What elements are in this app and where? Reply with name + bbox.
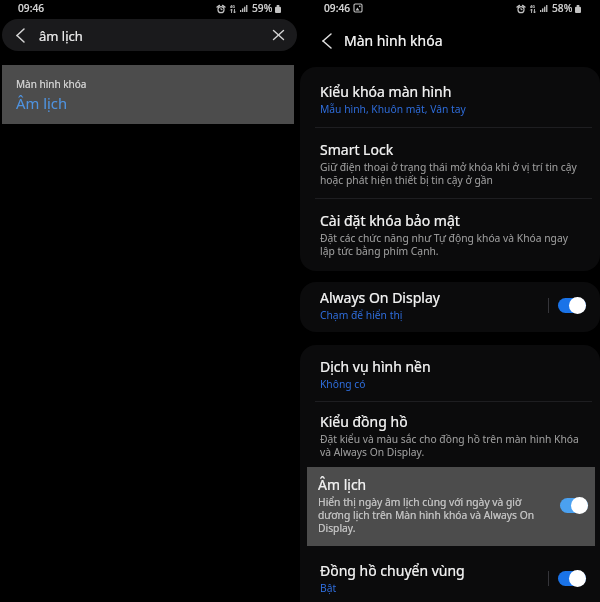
button[interactable]: Màn hình khóa [2, 65, 294, 124]
button[interactable]: Cài đặt khóa bảo mật [300, 199, 600, 271]
staticText: 4G [230, 4, 235, 9]
staticText: Smart Lock [320, 141, 394, 159]
staticText: Cài đặt khóa bảo mật [320, 212, 460, 230]
staticText: Kiểu khóa màn hình [320, 83, 452, 101]
staticText: 4G [530, 4, 535, 9]
staticText: Chạm để hiển thị [320, 308, 403, 321]
button[interactable]: Kiểu khóa màn hình [300, 67, 600, 127]
staticText: 58% [552, 2, 573, 15]
staticText: 09:46 [18, 2, 45, 15]
button[interactable]: Kiểu đồng hồ [300, 402, 600, 467]
staticText: Không có [320, 377, 366, 390]
staticText: Đặt kiểu và màu sắc cho đồng hồ trên màn… [320, 432, 579, 458]
staticText: Màn hình khóa [16, 78, 87, 91]
button[interactable]: Always On Display [558, 297, 586, 314]
staticText: Đặt các chức năng như Tự động khóa và Kh… [320, 231, 568, 257]
button[interactable]: Đồng hồ chuyển vùng [558, 570, 586, 587]
button[interactable]: Back [9, 24, 32, 47]
button[interactable]: Âm lịch [560, 497, 588, 514]
button[interactable]: Đồng hồ chuyển vùng [300, 546, 600, 602]
button[interactable]: Back [315, 29, 339, 53]
staticText: Hiển thị ngày âm lịch cùng với ngày và g… [318, 495, 535, 534]
staticText: Mẫu hình, Khuôn mặt, Vân tay [320, 102, 466, 115]
staticText: Đồng hồ chuyển vùng [320, 562, 465, 580]
staticText: Always On Display [320, 289, 440, 307]
staticText: 09:46 [324, 2, 351, 15]
button[interactable]: Always On Display [300, 282, 600, 332]
staticText: âm lịch [39, 28, 83, 45]
button[interactable]: Âm lịch [307, 467, 595, 546]
button[interactable]: Clear search [267, 24, 289, 46]
staticText: Âm lịch [318, 476, 367, 494]
staticText: Giữ điện thoại ở trạng thái mở khóa khi … [320, 160, 577, 186]
button[interactable]: Smart Lock [300, 128, 600, 198]
staticText: 59% [252, 2, 273, 15]
button[interactable]: Back [2, 19, 297, 51]
staticText: Màn hình khóa [344, 32, 443, 50]
staticText: Bật [320, 581, 337, 594]
staticText: Dịch vụ hình nền [320, 358, 431, 376]
staticText: Kiểu đồng hồ [320, 413, 408, 431]
staticText: Âm lịch [16, 94, 68, 113]
button[interactable]: Dịch vụ hình nền [300, 345, 600, 401]
